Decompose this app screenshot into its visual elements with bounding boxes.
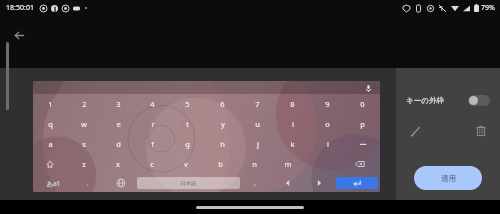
button[interactable]: 、 — [74, 174, 105, 192]
button[interactable]: o — [310, 114, 345, 134]
staticText: 1 — [48, 99, 53, 109]
staticText: a — [48, 139, 53, 149]
staticText: 3 — [116, 99, 121, 109]
button[interactable]: キーの外枠 — [396, 88, 500, 112]
button[interactable]: Change keyboard — [105, 174, 136, 192]
button[interactable]: Enter — [336, 177, 378, 189]
staticText: l — [327, 139, 329, 149]
staticText: 0 — [360, 99, 365, 109]
staticText: 、 — [86, 179, 93, 187]
button[interactable]: Shift — [33, 154, 67, 174]
button[interactable]: s — [67, 134, 101, 154]
button[interactable]: a — [33, 134, 67, 154]
button[interactable]: 7 — [240, 94, 275, 114]
staticText: g — [185, 139, 190, 149]
staticText: 4 — [150, 99, 155, 109]
staticText: キーの外枠 — [406, 96, 444, 105]
button[interactable]: 6 — [205, 94, 240, 114]
staticText: y — [221, 119, 225, 129]
staticText: z — [82, 159, 86, 169]
staticText: あa1 — [46, 179, 61, 188]
button[interactable]: v — [169, 154, 203, 174]
staticText: 7 — [255, 99, 260, 109]
button[interactable]: q — [33, 114, 67, 134]
button[interactable]: 3 — [101, 94, 135, 114]
button[interactable]: Edit — [404, 120, 426, 142]
button[interactable]: j — [240, 134, 275, 154]
button[interactable]: u — [240, 114, 275, 134]
button[interactable]: m — [271, 154, 305, 174]
staticText: s — [82, 139, 86, 149]
staticText: i — [292, 119, 294, 129]
button[interactable]: h — [205, 134, 240, 154]
staticText: 日本語 — [181, 180, 196, 186]
staticText: q — [48, 119, 53, 129]
button[interactable]: k — [275, 134, 310, 154]
staticText: 9 — [325, 99, 330, 109]
staticText: o — [325, 119, 330, 129]
button[interactable]: i — [275, 114, 310, 134]
button[interactable]: e — [101, 114, 135, 134]
staticText: v — [184, 159, 188, 169]
staticText: r — [151, 119, 155, 129]
button[interactable]: あa1 — [33, 174, 74, 192]
button[interactable]: 9 — [310, 94, 345, 114]
button[interactable]: Backspace — [339, 154, 380, 174]
staticText: 2 — [82, 99, 87, 109]
staticText: k — [290, 139, 295, 149]
staticText: 5 — [185, 99, 190, 109]
button[interactable]: Move cursor left — [272, 174, 303, 192]
button[interactable]: x — [101, 154, 135, 174]
staticText: 18:50:01 — [6, 3, 34, 13]
button[interactable]: z — [67, 154, 101, 174]
staticText: 8 — [290, 99, 295, 109]
button[interactable]: 5 — [170, 94, 205, 114]
staticText: m — [284, 159, 292, 169]
button[interactable]: 0 — [345, 94, 380, 114]
button[interactable]: 日本語 — [137, 177, 240, 189]
staticText: c — [150, 159, 154, 169]
button[interactable]: f — [135, 134, 170, 154]
button[interactable]: Back — [6, 22, 32, 48]
button[interactable]: 2 — [67, 94, 101, 114]
staticText: n — [252, 159, 257, 169]
staticText: u — [255, 119, 260, 129]
button[interactable]: t — [170, 114, 205, 134]
button[interactable]: p — [345, 114, 380, 134]
staticText: j — [257, 139, 259, 149]
staticText: t — [186, 119, 189, 129]
staticText: 適用 — [441, 174, 456, 183]
staticText: 79% — [481, 3, 495, 13]
staticText: f — [151, 139, 154, 149]
staticText: d — [116, 139, 121, 149]
staticText: x — [116, 159, 120, 169]
button[interactable]: n — [237, 154, 271, 174]
button[interactable]: b — [203, 154, 237, 174]
staticText: w — [81, 119, 87, 129]
button[interactable]: r — [135, 114, 170, 134]
staticText: ー — [359, 140, 367, 149]
button[interactable]: 。 — [241, 174, 272, 192]
staticText: 6 — [220, 99, 225, 109]
button[interactable]: 8 — [275, 94, 310, 114]
button[interactable]: y — [205, 114, 240, 134]
button[interactable]: g — [170, 134, 205, 154]
button[interactable]: l — [310, 134, 345, 154]
button[interactable]: c — [135, 154, 169, 174]
button[interactable]: 適用 — [414, 166, 482, 190]
staticText: 。 — [253, 179, 260, 187]
button[interactable]: d — [101, 134, 135, 154]
staticText: e — [116, 119, 121, 129]
staticText: p — [360, 119, 365, 129]
button[interactable]: Move cursor right — [303, 174, 334, 192]
button[interactable]: ー — [345, 134, 380, 154]
staticText: b — [218, 159, 223, 169]
button[interactable]: 1 — [33, 94, 67, 114]
button[interactable]: w — [67, 114, 101, 134]
button[interactable]: Voice input — [362, 82, 374, 94]
staticText: h — [220, 139, 225, 149]
button[interactable]: 4 — [135, 94, 170, 114]
button[interactable]: Delete — [470, 120, 492, 142]
